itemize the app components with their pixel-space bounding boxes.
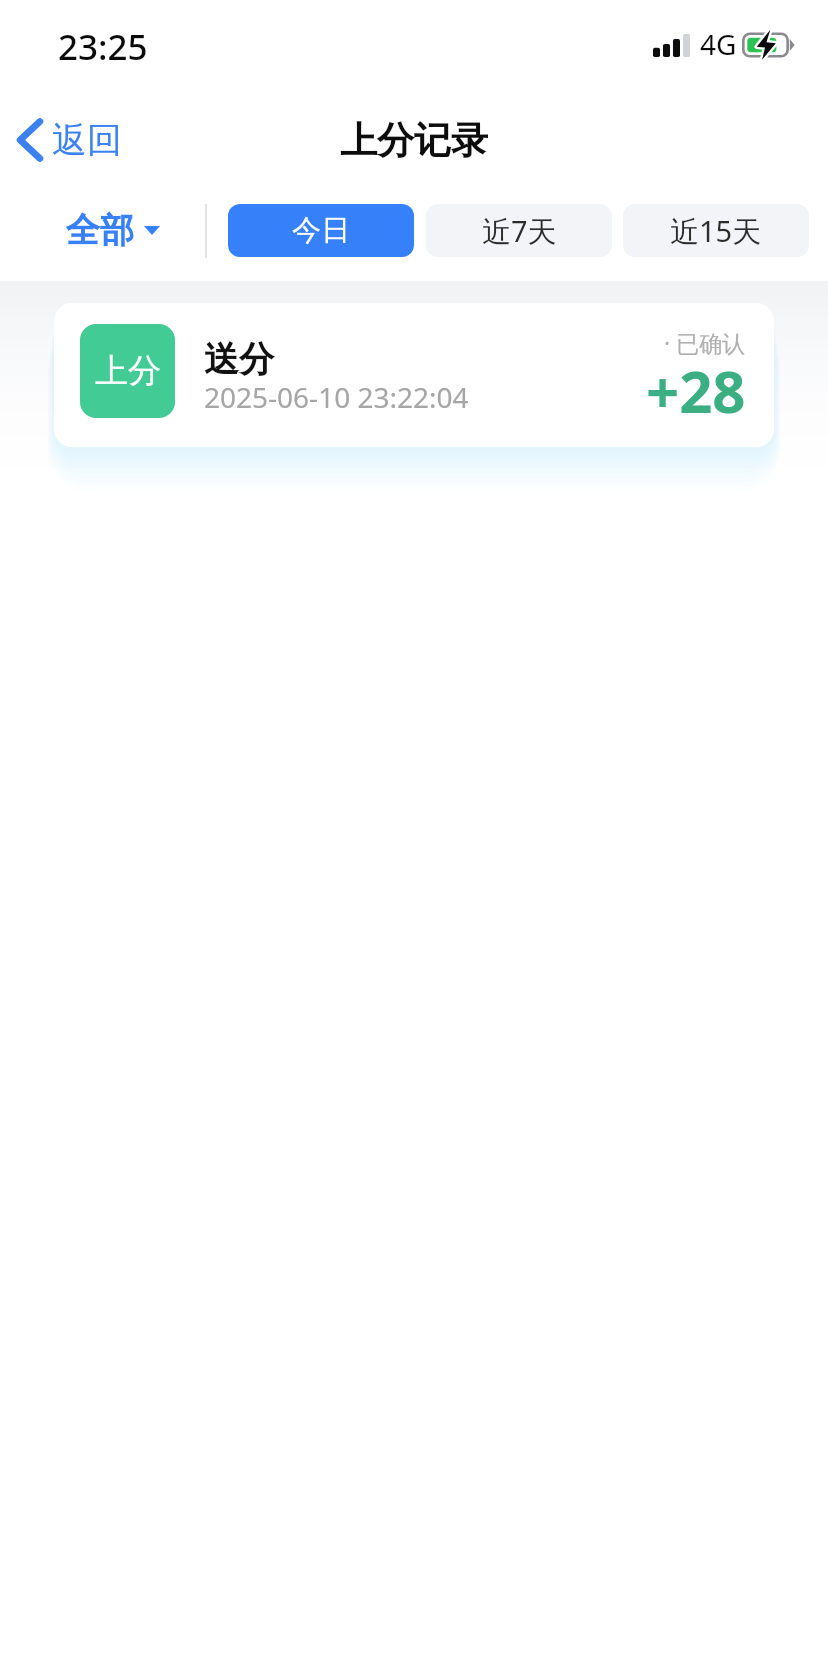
button[interactable]: Back [0,108,148,172]
button[interactable]: 近15天 [623,204,809,257]
other: Signal strength [653,34,690,57]
staticText: 近7天 [482,211,557,251]
staticText: 上分记录 [340,117,488,164]
staticText: +28 [646,351,746,430]
staticText: 近15天 [670,211,762,251]
staticText: 上分 [95,350,161,392]
staticText: 2025-06-10 23:22:04 [204,378,469,416]
staticText: 23:25 [58,23,148,71]
staticText: 4G [700,25,737,63]
other: Battery charging [742,31,796,59]
staticText: 返回 [52,118,122,162]
button[interactable]: 今日 [228,204,414,257]
staticText: 送分 [204,337,274,381]
button[interactable]: 上分 [54,303,774,447]
staticText: 全部 [66,209,134,252]
button[interactable]: 全部 [0,199,178,262]
button[interactable]: 近7天 [426,204,612,257]
staticText: · 已确认 [664,327,746,358]
staticText: 今日 [292,212,350,249]
